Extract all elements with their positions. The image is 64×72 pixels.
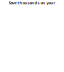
staticText: Save thousands on your: [8, 0, 55, 5]
